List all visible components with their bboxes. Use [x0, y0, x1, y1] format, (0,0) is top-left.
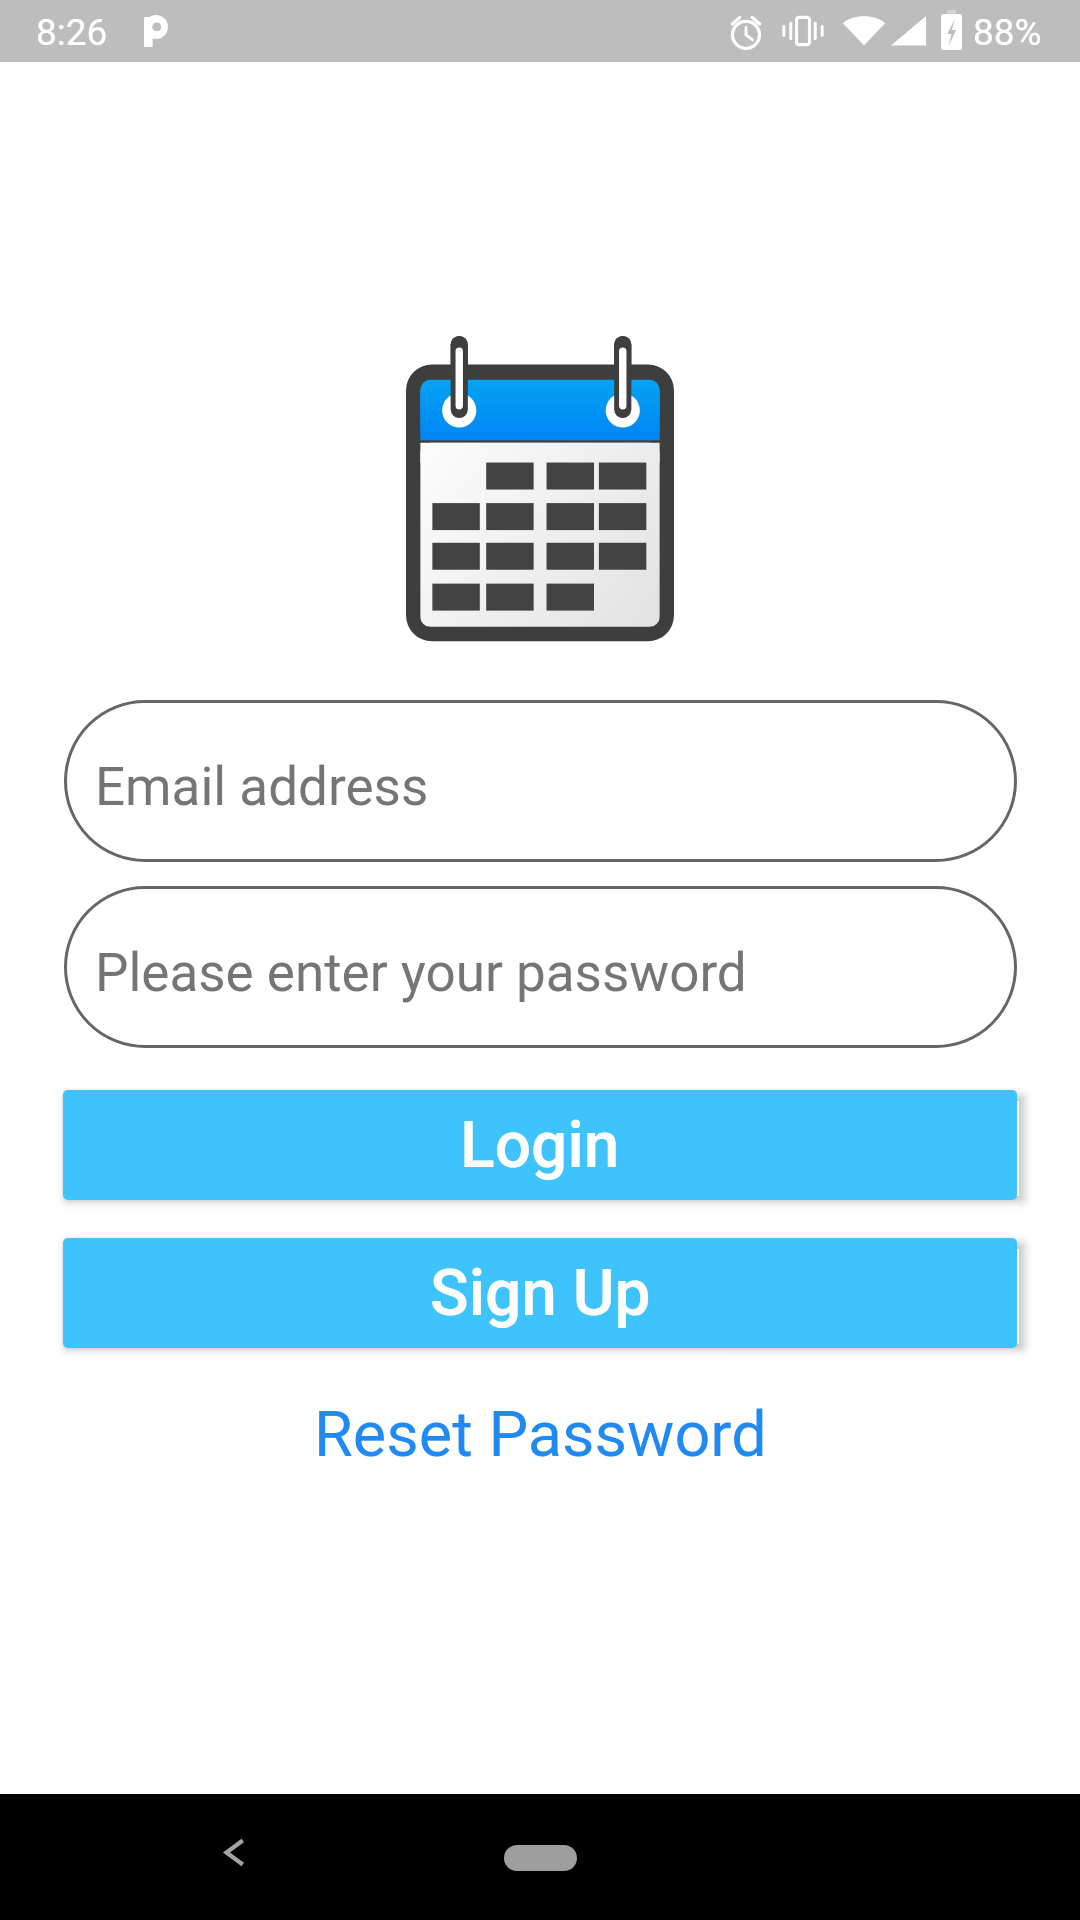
staticText: Sign Up — [430, 1256, 651, 1331]
staticText: Reset Password — [314, 1398, 767, 1472]
staticText: 8:26 — [36, 11, 108, 54]
staticText: Login — [460, 1108, 620, 1183]
button[interactable]: Please enter your password — [64, 886, 1017, 1048]
button[interactable]: Back — [193, 1812, 273, 1892]
staticText: 88% — [973, 11, 1042, 54]
staticText: Please enter your password — [95, 942, 747, 1004]
staticText: Email address — [95, 756, 429, 818]
button[interactable]: Login — [63, 1090, 1017, 1200]
button[interactable]: Email address — [64, 700, 1017, 862]
button[interactable]: Reset Password — [0, 1390, 1080, 1480]
button[interactable]: Sign Up — [63, 1238, 1017, 1348]
button[interactable]: Home — [504, 1845, 577, 1871]
